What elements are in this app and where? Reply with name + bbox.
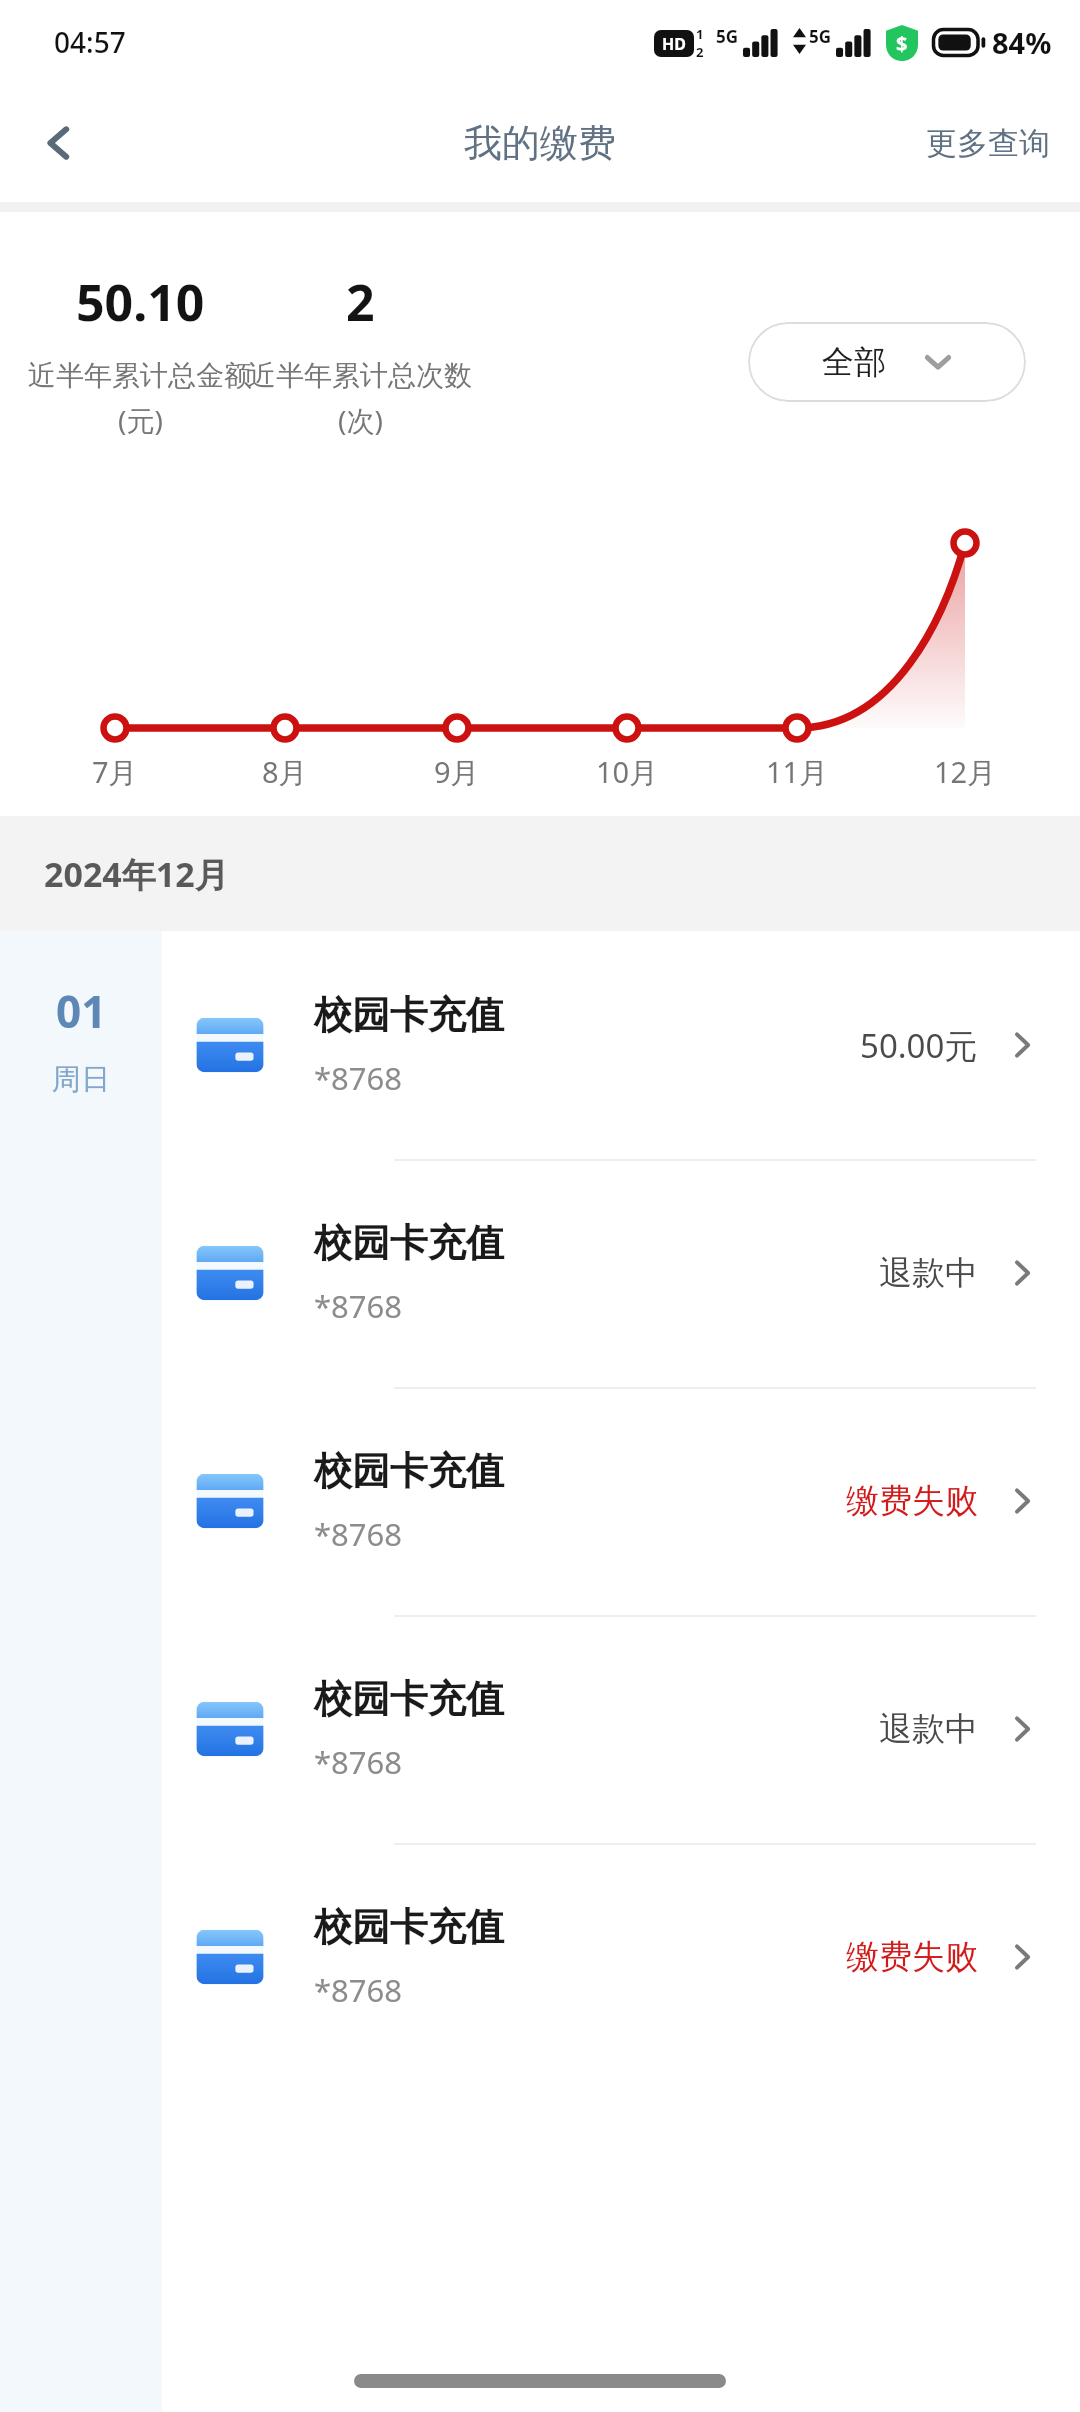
staticText: 10月 (596, 752, 659, 792)
staticText: 04:57 (54, 23, 126, 61)
staticText: 校园卡充值 (314, 1675, 504, 1723)
staticText: 更多查询 (926, 124, 1050, 163)
staticText: $ (896, 30, 908, 57)
staticText: 全部 (822, 342, 886, 382)
button[interactable]: 校园卡充值 (162, 1615, 1080, 1843)
staticText: 9月 (434, 752, 480, 792)
button[interactable]: 全部 (748, 322, 1026, 402)
staticText: 12月 (934, 752, 997, 792)
button[interactable]: 校园卡充值 (162, 1843, 1080, 2071)
staticText: *8768 (314, 1285, 403, 1327)
staticText: 50.10 (76, 268, 205, 336)
staticText: 校园卡充值 (314, 1903, 504, 1951)
staticText: 周日 (52, 1061, 110, 1098)
button[interactable]: 更多查询 (912, 108, 1064, 179)
staticText: *8768 (314, 1969, 403, 2011)
staticText: 校园卡充值 (314, 1219, 504, 1267)
button[interactable]: 校园卡充值 (162, 1387, 1080, 1615)
staticText: 校园卡充值 (314, 991, 504, 1039)
staticText: *8768 (314, 1513, 403, 1555)
staticText: *8768 (314, 1057, 403, 1099)
staticText: 01 (56, 981, 107, 1041)
staticText: 8月 (262, 752, 308, 792)
staticText: 7月 (92, 752, 138, 792)
staticText: 1 (696, 25, 704, 43)
staticText: 退款中 (879, 1252, 978, 1294)
button[interactable]: Back (0, 84, 118, 202)
staticText: (次) (338, 401, 383, 439)
staticText: *8768 (314, 1741, 403, 1783)
staticText: 84% (992, 23, 1052, 62)
staticText: 2024年12月 (44, 851, 229, 897)
button[interactable]: 校园卡充值 (162, 931, 1080, 1159)
button[interactable]: 校园卡充值 (162, 1159, 1080, 1387)
staticText: 50.00元 (860, 1023, 978, 1068)
staticText: 退款中 (879, 1708, 978, 1750)
staticText: 5G (716, 25, 739, 48)
staticText: 校园卡充值 (314, 1447, 504, 1495)
staticText: 近半年累计总金额 (28, 358, 252, 393)
staticText: 我的缴费 (464, 119, 616, 167)
staticText: 2 (346, 268, 375, 336)
staticText: 11月 (766, 752, 829, 792)
staticText: 缴费失败 (846, 1936, 978, 1978)
staticText: 缴费失败 (846, 1480, 978, 1522)
staticText: 2 (696, 43, 704, 61)
staticText: 5G (809, 25, 832, 48)
staticText: (元) (118, 401, 163, 439)
staticText: 近半年累计总次数 (248, 358, 472, 393)
staticText: HD (662, 33, 686, 55)
